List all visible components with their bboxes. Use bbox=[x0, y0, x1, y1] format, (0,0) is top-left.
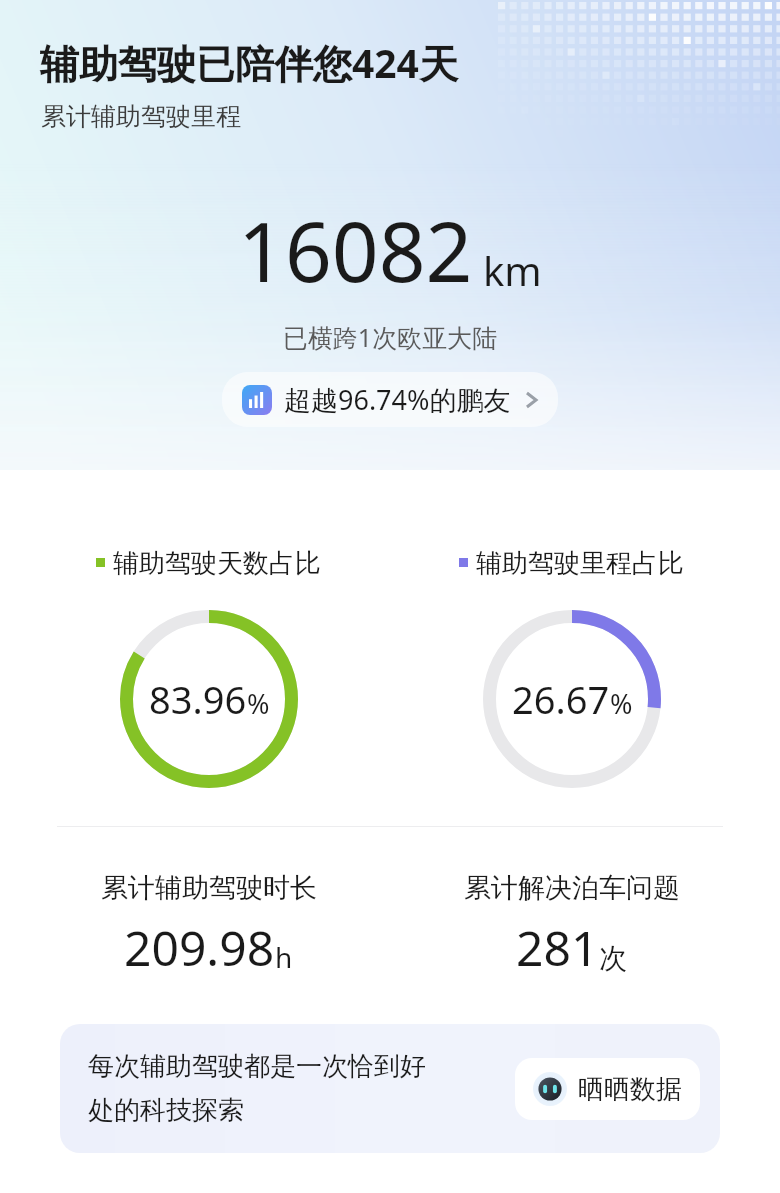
staticText: 辅助驾驶已陪伴您424天 bbox=[40, 36, 458, 89]
staticText: % bbox=[247, 685, 270, 722]
staticText: % bbox=[610, 685, 633, 722]
staticText: km bbox=[483, 243, 542, 297]
button[interactable]: 累计辅助驾驶时长 bbox=[27, 871, 390, 980]
staticText: 次 bbox=[599, 941, 627, 976]
staticText: 晒晒数据 bbox=[578, 1073, 682, 1106]
button[interactable]: 辅助驾驶天数占比 bbox=[27, 547, 390, 788]
other: 晒晒数据 bbox=[533, 1072, 567, 1106]
staticText: 每次辅助驾驶都是一次恰到好 处的科技探索 bbox=[88, 1050, 505, 1127]
staticText: 209.98 bbox=[124, 915, 275, 980]
staticText: 16082 bbox=[238, 194, 473, 306]
staticText: 累计解决泊车问题 bbox=[464, 871, 680, 905]
staticText: 超越96.74%的鹏友 bbox=[284, 381, 511, 418]
staticText: 83.96 bbox=[149, 673, 247, 725]
button[interactable]: 超越96.74%的鹏友 bbox=[222, 372, 558, 427]
staticText: 辅助驾驶里程占比 bbox=[476, 547, 684, 580]
staticText: 26.67 bbox=[512, 673, 610, 725]
button[interactable]: 累计解决泊车问题 bbox=[390, 871, 753, 980]
staticText: 281 bbox=[516, 915, 599, 980]
staticText: 累计辅助驾驶时长 bbox=[101, 871, 317, 905]
button[interactable]: 晒晒数据 bbox=[515, 1058, 700, 1120]
staticText: 辅助驾驶天数占比 bbox=[113, 547, 321, 580]
button[interactable]: 辅助驾驶里程占比 bbox=[390, 547, 753, 788]
staticText: 累计辅助驾驶里程 bbox=[41, 101, 241, 132]
staticText: h bbox=[275, 938, 293, 976]
staticText: 已横跨1次欧亚大陆 bbox=[0, 320, 780, 354]
